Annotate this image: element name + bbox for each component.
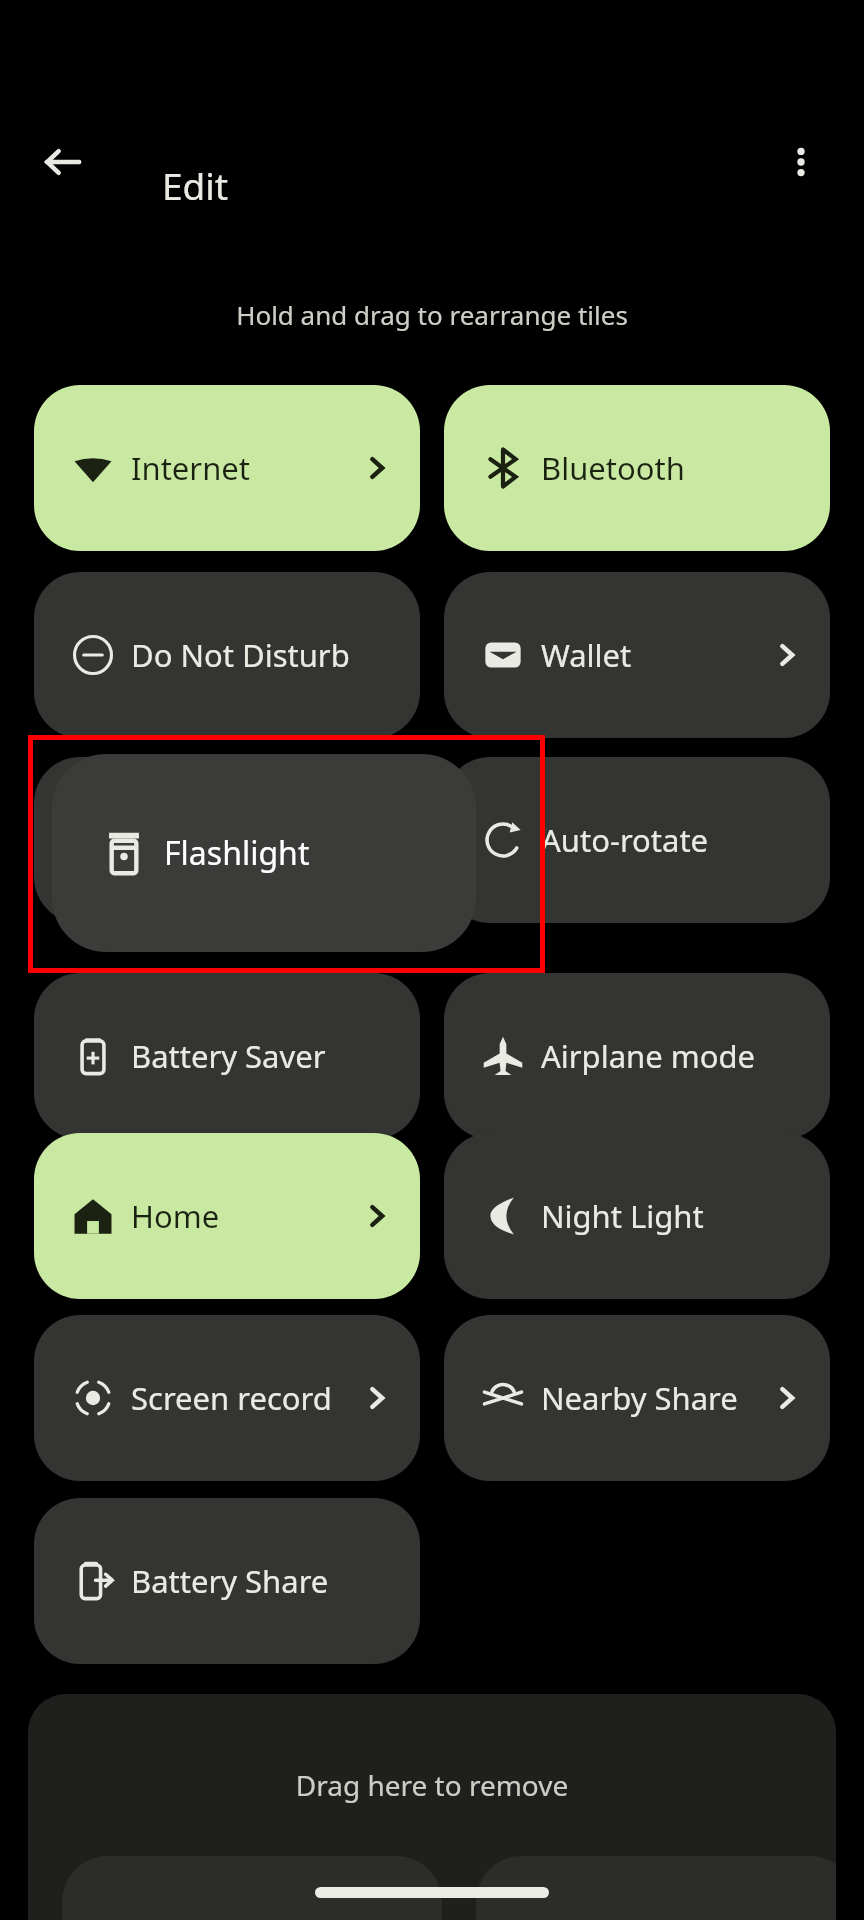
staticText: Do Not Disturb: [131, 634, 350, 676]
staticText: Internet: [131, 447, 250, 489]
button[interactable]: [34, 757, 420, 923]
staticText: Home: [131, 1195, 220, 1237]
staticText: Nearby Share: [541, 1377, 738, 1419]
staticText: Wallet: [541, 634, 632, 676]
button[interactable]: Night Light: [444, 1133, 830, 1299]
staticText: Drag here to remove: [28, 1766, 836, 1804]
button[interactable]: More options: [772, 133, 830, 191]
staticText: Battery Share: [131, 1560, 329, 1602]
button[interactable]: Back: [34, 133, 92, 191]
staticText: Flashlight: [164, 831, 310, 875]
button[interactable]: Bluetooth: [444, 385, 830, 551]
button[interactable]: Auto-rotate: [444, 757, 830, 923]
staticText: Edit: [162, 160, 229, 210]
staticText: Night Light: [541, 1195, 704, 1237]
staticText: Auto-rotate: [541, 819, 709, 861]
button[interactable]: Internet: [34, 385, 420, 551]
staticText: Battery Saver: [131, 1035, 326, 1077]
button[interactable]: Wallet: [444, 572, 830, 738]
button[interactable]: Battery Saver: [34, 973, 420, 1139]
button[interactable]: Airplane mode: [444, 973, 830, 1139]
staticText: Screen record: [131, 1377, 332, 1419]
button[interactable]: Screen record: [34, 1315, 420, 1481]
staticText: Hold and drag to rearrange tiles: [0, 297, 864, 332]
staticText: Airplane mode: [541, 1035, 756, 1077]
button[interactable]: Do Not Disturb: [34, 572, 420, 738]
staticText: Bluetooth: [541, 447, 685, 489]
button[interactable]: Nearby Share: [444, 1315, 830, 1481]
button[interactable]: Home: [34, 1133, 420, 1299]
button[interactable]: Drag here to remove: [28, 1694, 836, 1920]
button[interactable]: Flashlight: [52, 754, 476, 952]
button[interactable]: Battery Share: [34, 1498, 420, 1664]
